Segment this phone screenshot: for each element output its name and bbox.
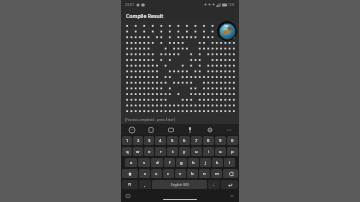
button[interactable]: Translate	[166, 125, 175, 134]
staticText: h	[192, 160, 195, 166]
button[interactable]: 6	[179, 136, 190, 145]
button[interactable]: ?1	[122, 180, 138, 189]
button[interactable]: f	[164, 158, 175, 167]
button[interactable]: 0	[227, 136, 238, 145]
button[interactable]: r	[155, 147, 166, 156]
button[interactable]: m	[211, 169, 222, 178]
staticText: k	[216, 160, 219, 166]
button[interactable]: d	[151, 158, 163, 167]
button[interactable]: Settings	[205, 125, 214, 134]
button[interactable]: 7	[191, 136, 202, 145]
staticText: 1	[126, 138, 129, 144]
staticText: c	[167, 171, 170, 177]
button[interactable]: 5	[167, 136, 178, 145]
staticText: t	[172, 149, 174, 155]
button[interactable]: t	[167, 147, 178, 156]
button[interactable]: l	[224, 158, 235, 167]
button[interactable]: Keyboard layout	[125, 193, 131, 199]
staticText: 8	[207, 138, 210, 144]
button[interactable]: w	[133, 147, 143, 156]
staticText: 2	[137, 138, 140, 144]
staticText: 23:01	[125, 2, 134, 7]
button[interactable]: 4	[155, 136, 166, 145]
staticText: j	[205, 160, 207, 166]
button[interactable]: More options	[224, 125, 233, 134]
staticText: .	[213, 182, 215, 188]
button[interactable]: Voice input	[185, 125, 194, 134]
staticText: 5	[171, 138, 174, 144]
staticText: p	[231, 149, 234, 155]
button[interactable]: h	[188, 158, 199, 167]
staticText: b	[191, 171, 194, 177]
staticText: w	[136, 149, 140, 155]
staticText: 4	[159, 138, 162, 144]
button[interactable]: z	[139, 169, 150, 178]
button[interactable]: x	[151, 169, 162, 178]
staticText: u	[195, 149, 198, 155]
button[interactable]: 9	[215, 136, 226, 145]
staticText: z	[144, 171, 146, 177]
button[interactable]: ,	[139, 180, 151, 189]
staticText: i	[208, 149, 210, 155]
staticText: 0	[231, 138, 234, 144]
button[interactable]: 8	[203, 136, 214, 145]
button[interactable]: y	[179, 147, 190, 156]
button[interactable]: j	[200, 158, 211, 167]
staticText: l	[229, 160, 231, 166]
button[interactable]: v	[175, 169, 186, 178]
button[interactable]: Enter	[221, 180, 238, 189]
staticText: 3	[148, 138, 151, 144]
button[interactable]: o	[215, 147, 226, 156]
staticText: 12%	[228, 3, 235, 7]
staticText: [Process completed - press Enter]	[125, 118, 175, 122]
staticText: 6	[183, 138, 186, 144]
button[interactable]: Backspace	[223, 169, 238, 178]
button[interactable]: Emoji	[127, 125, 136, 134]
staticText: s	[143, 160, 146, 166]
button[interactable]: English (US)	[152, 180, 207, 189]
button[interactable]: p	[227, 147, 238, 156]
button[interactable]: e	[144, 147, 154, 156]
staticText: 7	[195, 138, 198, 144]
button[interactable]: n	[199, 169, 210, 178]
button[interactable]: Profile avatar	[217, 21, 237, 41]
button[interactable]: q	[122, 147, 132, 156]
button[interactable]: 2	[133, 136, 143, 145]
staticText: y	[183, 149, 186, 155]
staticText: 9	[219, 138, 222, 144]
staticText: x	[155, 171, 158, 177]
button[interactable]: 1	[122, 136, 132, 145]
staticText: d	[156, 160, 159, 166]
staticText: Compile Result	[126, 12, 164, 19]
staticText: English (US)	[171, 183, 189, 187]
staticText: e	[148, 149, 151, 155]
staticText: f	[169, 160, 171, 166]
button[interactable]: Clipboard	[146, 125, 155, 134]
staticText: ?1	[128, 182, 132, 187]
button[interactable]: i	[203, 147, 214, 156]
staticText: n	[203, 171, 206, 177]
button[interactable]: Hide keyboard	[229, 193, 235, 199]
button[interactable]: u	[191, 147, 202, 156]
button[interactable]: .	[208, 180, 220, 189]
staticText: v	[179, 171, 182, 177]
staticText: q	[126, 149, 129, 155]
button[interactable]: b	[187, 169, 198, 178]
staticText: g	[180, 160, 183, 166]
button[interactable]: a	[125, 158, 137, 167]
staticText: o	[219, 149, 222, 155]
staticText: ,	[144, 182, 146, 188]
button[interactable]: g	[176, 158, 187, 167]
button[interactable]: k	[212, 158, 223, 167]
button[interactable]: c	[163, 169, 174, 178]
button[interactable]: s	[138, 158, 150, 167]
button[interactable]: Shift	[122, 169, 138, 178]
staticText: a	[130, 160, 133, 166]
staticText: r	[160, 149, 162, 155]
button[interactable]: 3	[144, 136, 154, 145]
staticText: m	[215, 171, 219, 177]
